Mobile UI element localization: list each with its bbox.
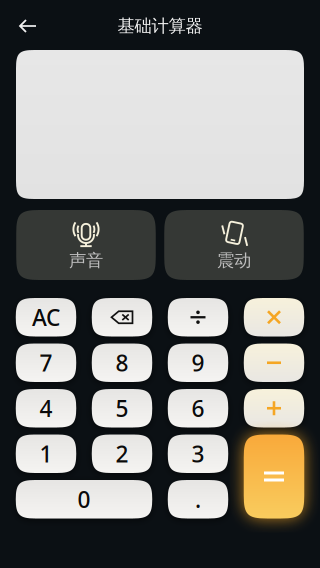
staticText: 声音	[69, 250, 103, 271]
staticText: .	[195, 484, 201, 514]
staticText: 震动	[217, 250, 251, 271]
staticText: 9	[191, 348, 204, 378]
button[interactable]: 2	[92, 434, 152, 473]
button[interactable]: 8	[92, 343, 152, 382]
staticText: 8	[115, 348, 128, 378]
button[interactable]: 4	[16, 389, 76, 427]
staticText: 基础计算器	[117, 15, 202, 37]
staticText: AC	[32, 302, 60, 332]
button[interactable]	[244, 343, 304, 382]
staticText: 5	[115, 393, 128, 423]
button[interactable]: AC	[16, 298, 76, 336]
button[interactable]: 7	[16, 343, 76, 382]
button[interactable]: 6	[168, 389, 228, 427]
button[interactable]	[92, 298, 152, 336]
staticText: 4	[39, 393, 52, 423]
button[interactable]: 声音	[16, 210, 156, 280]
staticText: 7	[39, 348, 52, 378]
button[interactable]	[168, 298, 228, 336]
staticText: 2	[115, 439, 128, 469]
staticText: 6	[191, 393, 204, 423]
button[interactable]: 9	[168, 343, 228, 382]
button[interactable]: 震动	[164, 210, 304, 280]
button[interactable]: 5	[92, 389, 152, 427]
button[interactable]: 3	[168, 434, 228, 473]
staticText: 0	[77, 484, 90, 514]
button[interactable]: Back	[8, 8, 48, 44]
button[interactable]	[244, 298, 304, 336]
button[interactable]	[244, 434, 304, 518]
button[interactable]	[244, 389, 304, 427]
button[interactable]: .	[168, 480, 228, 518]
staticText: 1	[39, 439, 52, 469]
button[interactable]: 1	[16, 434, 76, 473]
button[interactable]: 0	[16, 480, 152, 518]
staticText: 3	[191, 439, 204, 469]
